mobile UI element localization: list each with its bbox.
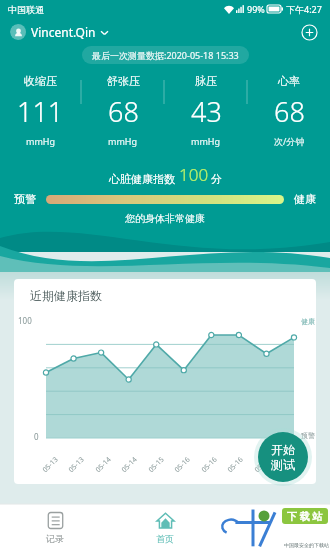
staticText: 近期健康指数 bbox=[30, 288, 102, 303]
staticText: 05-15 bbox=[146, 455, 167, 475]
staticText: 分 bbox=[211, 172, 222, 186]
staticText: 收缩压 bbox=[24, 74, 57, 88]
staticText: 100 bbox=[179, 163, 209, 186]
button[interactable]: 心率 bbox=[248, 74, 330, 147]
button[interactable]: 近期健康指数 bbox=[14, 279, 316, 484]
staticText: 05-16 bbox=[172, 455, 193, 475]
button[interactable]: 记录 bbox=[0, 504, 110, 550]
button[interactable]: 首页 bbox=[110, 504, 220, 550]
staticText: 中国最安全的下载站 bbox=[284, 542, 329, 548]
staticText: 次/分钟 bbox=[274, 135, 305, 147]
button[interactable]: 舒张压 bbox=[82, 74, 164, 147]
staticText: 记录 bbox=[46, 533, 64, 544]
staticText: 111 bbox=[17, 93, 64, 130]
staticText: 测试 bbox=[271, 457, 295, 472]
staticText: 首页 bbox=[156, 533, 174, 544]
button[interactable]: Add bbox=[298, 21, 320, 43]
staticText: 健康 bbox=[301, 317, 315, 326]
staticText: 预警 bbox=[14, 192, 36, 206]
button[interactable]: 脉压 bbox=[165, 74, 247, 147]
staticText: 心脏健康指数 bbox=[109, 172, 175, 186]
staticText: 99% bbox=[247, 3, 265, 15]
staticText: 43 bbox=[191, 93, 222, 130]
staticText: 05-13 bbox=[66, 455, 87, 475]
staticText: 开始 bbox=[271, 442, 295, 457]
staticText: 68 bbox=[108, 93, 139, 130]
staticText: 健康 bbox=[294, 192, 316, 206]
staticText: 68 bbox=[274, 93, 305, 130]
staticText: 100 bbox=[18, 315, 32, 326]
staticText: 下 载 站 bbox=[287, 509, 323, 523]
staticText: 舒张压 bbox=[107, 74, 140, 88]
staticText: 最后一次测量数据:2020-05-18 15:33 bbox=[92, 49, 239, 61]
staticText: 预警 bbox=[301, 431, 315, 440]
staticText: 脉压 bbox=[195, 74, 217, 88]
staticText: 05-18 bbox=[278, 455, 299, 475]
staticText: 05-13 bbox=[40, 455, 61, 475]
button[interactable]: 开始 bbox=[254, 428, 312, 486]
staticText: 05-14 bbox=[119, 455, 140, 475]
staticText: mmHg bbox=[26, 135, 56, 147]
staticText: 05-17 bbox=[252, 455, 273, 475]
staticText: 下午4:27 bbox=[286, 3, 322, 15]
staticText: 0 bbox=[34, 431, 39, 442]
staticText: 05-16 bbox=[225, 455, 246, 475]
staticText: 05-16 bbox=[199, 455, 220, 475]
staticText: Vincent.Qin bbox=[31, 24, 96, 40]
button[interactable]: Vincent.Qin bbox=[10, 24, 109, 40]
staticText: mmHg bbox=[191, 135, 221, 147]
staticText: mmHg bbox=[108, 135, 138, 147]
staticText: 中国联通 bbox=[8, 4, 44, 15]
staticText: 心率 bbox=[278, 74, 300, 88]
button[interactable]: 收缩压 bbox=[0, 74, 81, 147]
staticText: 05-14 bbox=[93, 455, 114, 475]
staticText: 您的身体非常健康 bbox=[125, 212, 205, 225]
